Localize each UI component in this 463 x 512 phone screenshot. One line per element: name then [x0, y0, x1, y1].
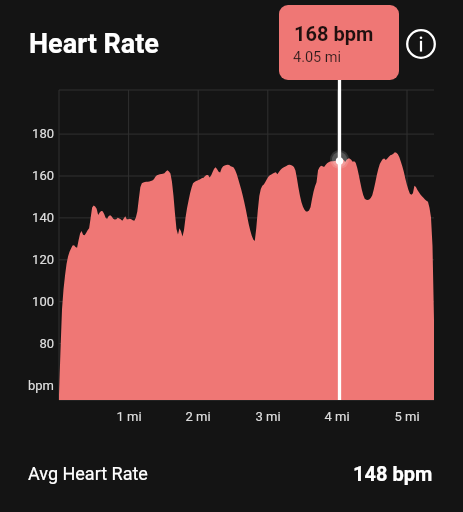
- staticText: 100: [10, 294, 54, 309]
- staticText: 4 mi: [312, 409, 362, 424]
- staticText: 1 mi: [104, 409, 154, 424]
- staticText: 168 bpm: [294, 22, 374, 45]
- button[interactable]: 168 bpm: [279, 5, 399, 80]
- staticText: 120: [10, 252, 54, 267]
- staticText: 80: [10, 336, 54, 351]
- staticText: 180: [10, 126, 54, 141]
- staticText: 4.05 mi: [293, 49, 342, 66]
- staticText: 148 bpm: [353, 462, 433, 485]
- staticText: 2 mi: [173, 409, 223, 424]
- button[interactable]: Info: [404, 27, 437, 60]
- button[interactable]: Avg Heart Rate: [28, 463, 148, 484]
- staticText: bpm: [10, 378, 54, 393]
- staticText: 160: [10, 168, 54, 183]
- staticText: 140: [10, 210, 54, 225]
- staticText: 5 mi: [382, 409, 432, 424]
- staticText: Heart Rate: [29, 28, 159, 60]
- staticText: 3 mi: [243, 409, 293, 424]
